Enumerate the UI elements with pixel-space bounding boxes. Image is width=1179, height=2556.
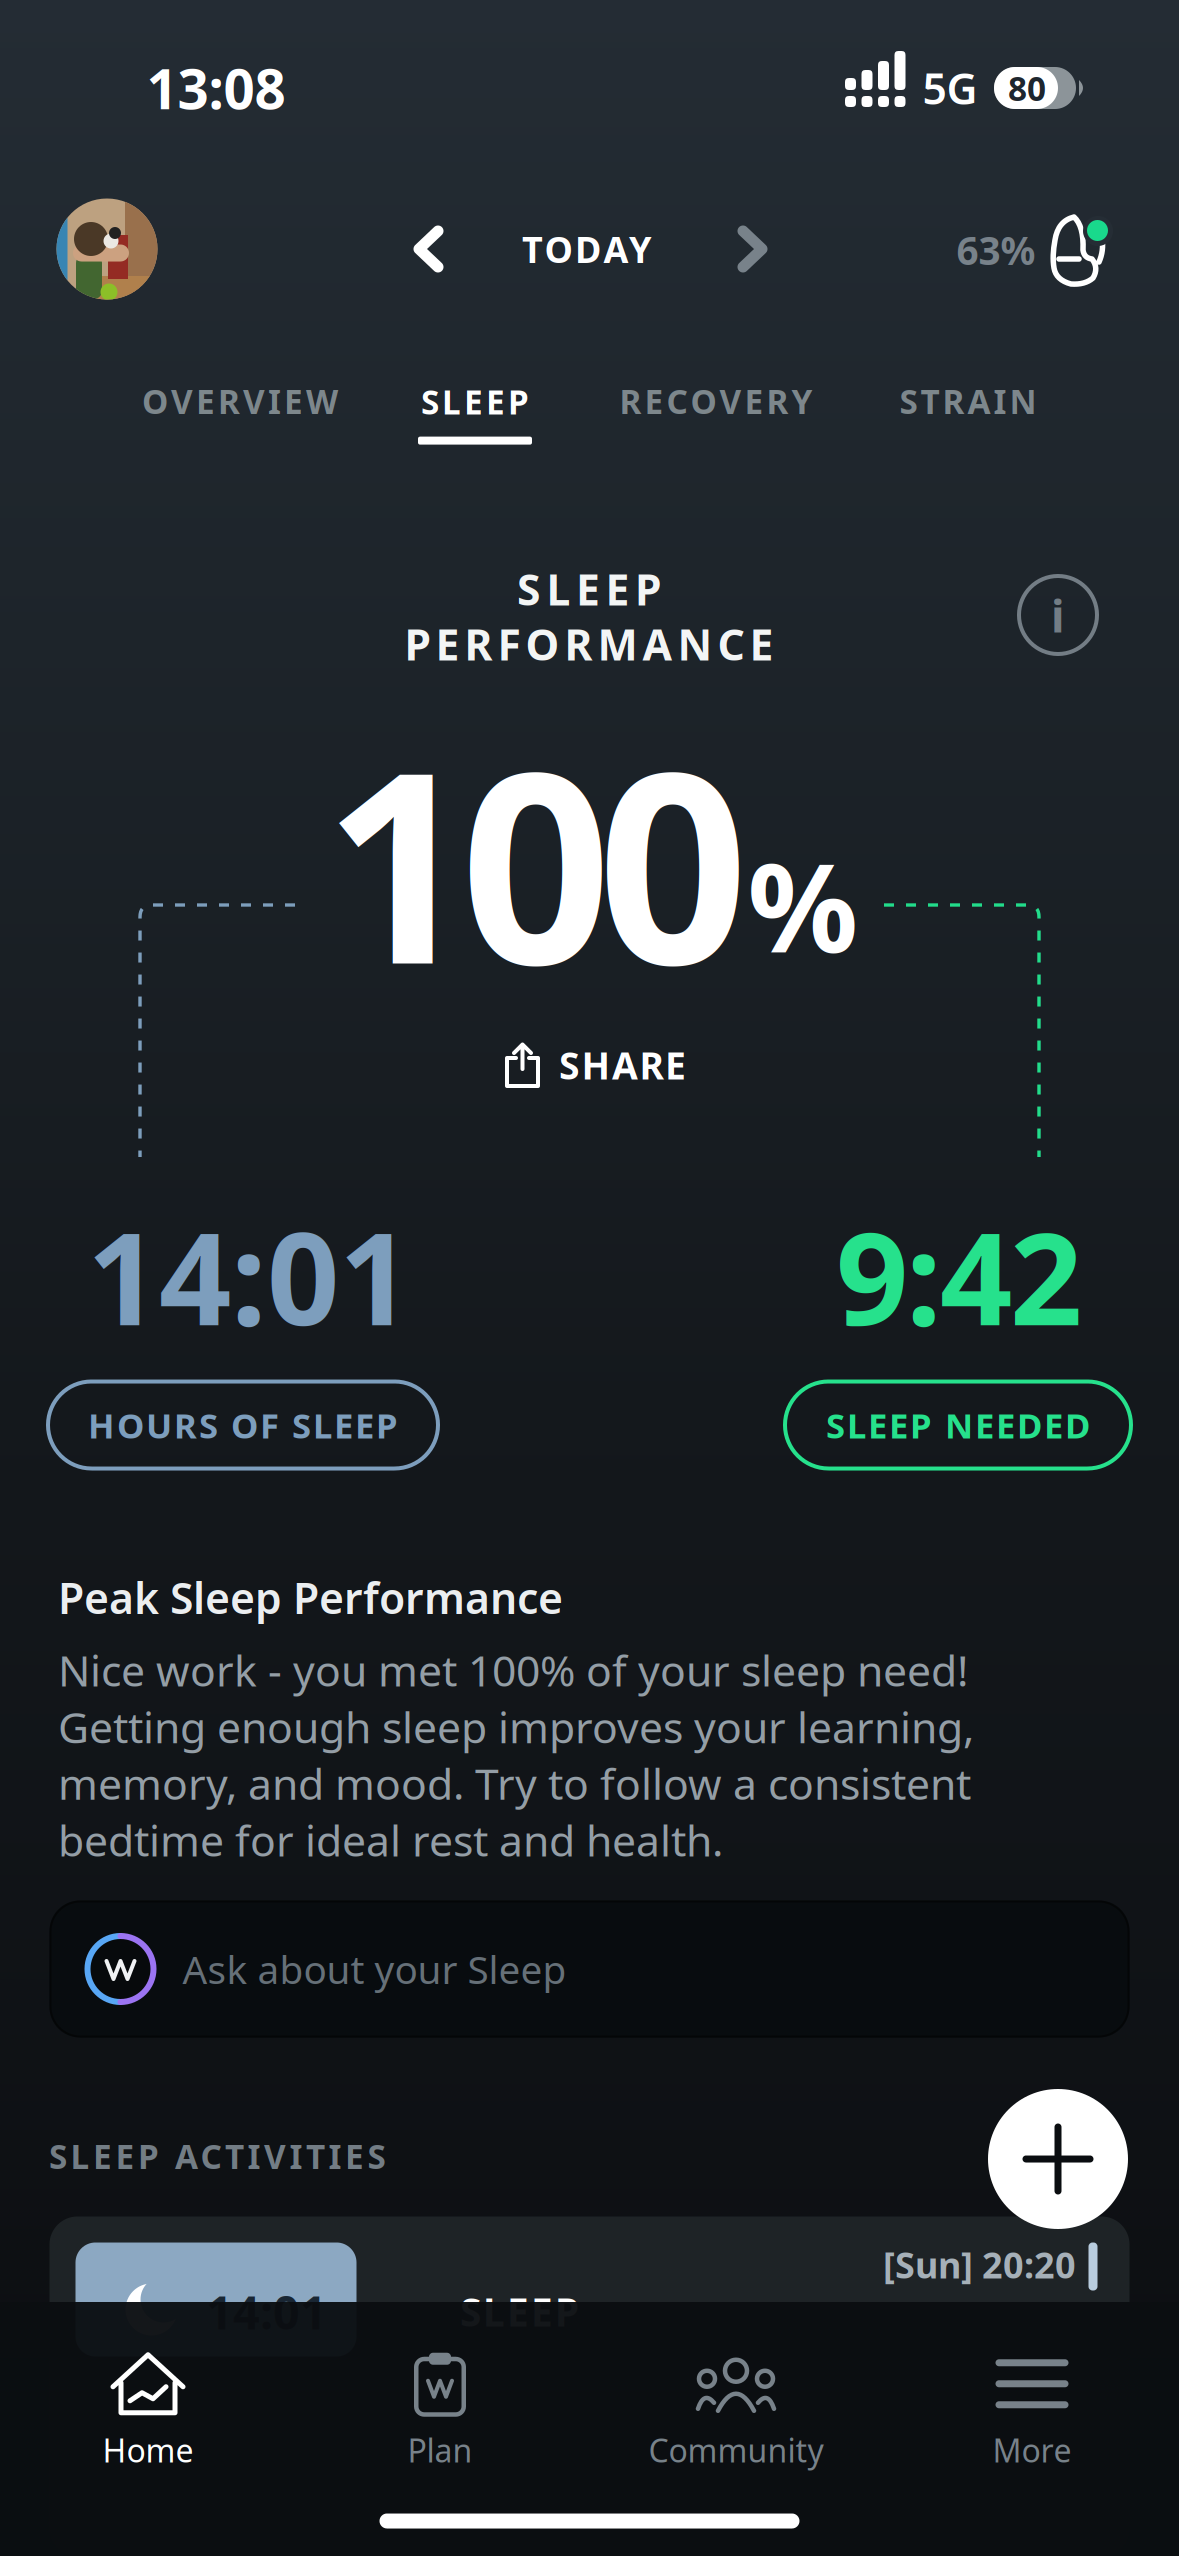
- button[interactable]: Ask about your Sleep: [49, 1900, 1129, 2037]
- button[interactable]: SLEEP: [418, 379, 532, 445]
- staticText: SLEEP: [460, 2286, 579, 2337]
- staticText: Community: [648, 2429, 823, 2471]
- button[interactable]: About Sleep Performance: [1017, 574, 1099, 656]
- button[interactable]: RECOVERY: [619, 379, 812, 423]
- staticText: 80: [1008, 66, 1046, 110]
- button[interactable]: Add sleep activity: [988, 2089, 1128, 2229]
- staticText: 100: [323, 686, 748, 1036]
- button[interactable]: Previous day: [411, 224, 445, 274]
- staticText: [Sun] 20:20: [883, 2241, 1076, 2288]
- staticText: SLEEP NEEDED: [826, 1402, 1090, 1448]
- staticText: memory, and mood. Try to follow a consis…: [58, 1755, 971, 1812]
- staticText: Getting enough sleep improves your learn…: [58, 1698, 974, 1755]
- staticText: SLEEP: [421, 379, 529, 424]
- staticText: STRAIN: [899, 379, 1036, 423]
- staticText: 9:42: [836, 1192, 1082, 1360]
- button[interactable]: More: [992, 2353, 1071, 2471]
- staticText: TODAY: [522, 225, 652, 273]
- button[interactable]: OVERVIEW: [142, 379, 338, 423]
- staticText: 63%: [956, 224, 1035, 276]
- staticText: SHARE: [559, 1040, 686, 1090]
- button[interactable]: Next day: [736, 224, 770, 274]
- button[interactable]: STRAIN: [899, 379, 1036, 423]
- staticText: RECOVERY: [619, 379, 812, 423]
- staticText: OVERVIEW: [142, 379, 338, 423]
- staticText: Peak Sleep Performance: [58, 1569, 563, 1626]
- staticText: Plan: [407, 2429, 472, 2471]
- staticText: i: [1051, 585, 1065, 645]
- button[interactable]: Profile: [56, 198, 157, 299]
- button[interactable]: SHARE: [504, 1040, 686, 1090]
- button[interactable]: Sleep activity: [49, 2216, 1129, 2555]
- staticText: Nice work - you met 100% of your sleep n…: [58, 1642, 968, 1698]
- staticText: More: [992, 2429, 1071, 2471]
- staticText: Home: [102, 2429, 193, 2471]
- button[interactable]: Community: [648, 2353, 823, 2471]
- button[interactable]: Home: [102, 2353, 193, 2471]
- staticText: Ask about your Sleep: [182, 1943, 566, 1995]
- staticText: HOURS OF SLEEP: [88, 1402, 398, 1448]
- staticText: 14:01: [87, 1192, 411, 1360]
- button[interactable]: Plan: [402, 2353, 478, 2471]
- staticText: SLEEP ACTIVITIES: [49, 2134, 385, 2178]
- staticText: %: [747, 824, 858, 986]
- staticText: 5G: [922, 60, 977, 116]
- staticText: SLEEP: [517, 561, 661, 617]
- staticText: 14:01: [206, 2280, 327, 2342]
- staticText: 13:08: [146, 52, 285, 124]
- staticText: PERFORMANCE: [404, 616, 773, 672]
- staticText: bedtime for ideal rest and health.: [58, 1812, 723, 1868]
